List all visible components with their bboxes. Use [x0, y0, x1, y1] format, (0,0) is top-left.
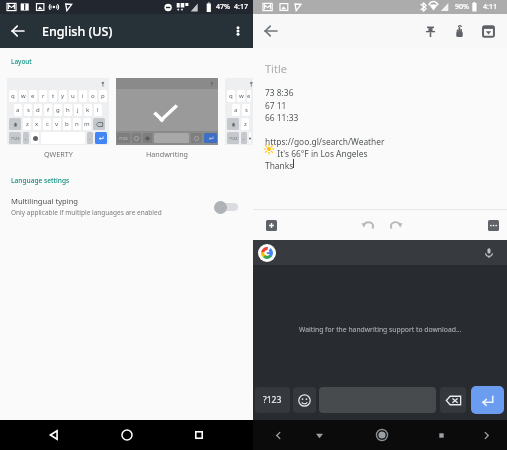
staticText: x	[35, 120, 39, 128]
button[interactable]: Back	[36, 420, 72, 450]
staticText: e	[247, 92, 251, 100]
button[interactable]: Back	[253, 14, 289, 48]
staticText: b	[65, 120, 69, 128]
staticText: r	[42, 92, 45, 100]
button[interactable]: Add	[261, 215, 281, 235]
staticText: ?123	[229, 136, 238, 141]
button[interactable]: Emoji	[293, 387, 316, 413]
button[interactable]: Voice input	[479, 243, 499, 263]
staticText: z	[244, 120, 247, 128]
staticText: .	[89, 135, 91, 142]
button[interactable]: ?123	[116, 78, 218, 145]
button[interactable]: ?123	[255, 387, 290, 413]
staticText: t	[52, 92, 55, 100]
staticText: Multilingual typing	[11, 196, 79, 206]
staticText: 47%	[216, 2, 230, 12]
button[interactable]: Home	[334, 420, 430, 450]
staticText: ?123	[11, 136, 20, 141]
staticText: 90%	[455, 2, 469, 12]
staticText: q	[229, 92, 233, 100]
staticText: v	[55, 120, 59, 128]
staticText: y	[61, 92, 65, 100]
button[interactable]: Remind me	[445, 14, 474, 48]
button[interactable]: Previous	[253, 420, 304, 450]
button[interactable]: Recents	[181, 420, 217, 450]
staticText: ?123	[263, 394, 282, 406]
staticText: q	[11, 92, 15, 100]
button[interactable]: More options	[483, 215, 503, 235]
button[interactable]: Pin	[416, 14, 445, 48]
button[interactable]: Multilingual typing	[0, 196, 253, 217]
staticText: d	[36, 106, 40, 114]
button[interactable]: Next	[468, 420, 504, 450]
staticText: w	[21, 92, 26, 100]
staticText: z	[26, 120, 29, 128]
button[interactable]	[213, 198, 243, 216]
staticText: Layout	[11, 57, 32, 66]
button[interactable]: Enter	[471, 386, 504, 414]
button[interactable]: Undo	[358, 215, 378, 235]
staticText: ,	[25, 135, 27, 142]
button[interactable]: Recents	[430, 420, 452, 450]
staticText: 4:11	[483, 2, 497, 12]
staticText: English (US)	[42, 23, 113, 40]
button[interactable]: q	[7, 78, 109, 145]
button[interactable]: More options	[223, 14, 253, 48]
staticText: a	[16, 106, 20, 114]
button[interactable]: Google search	[258, 244, 276, 262]
staticText: c	[46, 120, 49, 128]
staticText: o	[91, 92, 95, 100]
staticText: Title	[265, 61, 287, 76]
staticText: a	[234, 106, 238, 114]
staticText: QWERTY	[44, 149, 73, 159]
staticText: i	[82, 92, 84, 100]
staticText: h	[66, 106, 70, 114]
staticText: f	[47, 106, 50, 114]
button[interactable]: Backspace	[440, 387, 466, 413]
staticText: j	[77, 106, 79, 114]
staticText: Handwriting	[146, 149, 189, 159]
button[interactable]: Hide keyboard	[304, 420, 334, 450]
staticText: 4:17	[234, 2, 248, 12]
staticText: u	[71, 92, 75, 100]
staticText: w	[239, 92, 244, 100]
staticText: ?123	[119, 136, 128, 141]
staticText: g	[56, 106, 60, 114]
staticText: Language settings	[11, 176, 70, 185]
staticText: s	[27, 106, 30, 114]
staticText: l	[97, 106, 99, 114]
staticText: Only applicable if multiple languages ar…	[11, 208, 162, 217]
staticText: n	[75, 120, 79, 128]
staticText: Waiting for the handwriting support to d…	[299, 325, 462, 334]
staticText: ,	[243, 135, 245, 142]
button[interactable]: Redo	[386, 215, 406, 235]
staticText: p	[101, 92, 105, 100]
button[interactable]: Archive	[474, 14, 503, 48]
staticText: s	[245, 106, 248, 114]
button[interactable]: Back	[0, 14, 36, 48]
button[interactable]: Home	[109, 420, 145, 450]
staticText: e	[31, 92, 35, 100]
staticText: k	[86, 106, 90, 114]
button[interactable]: q	[225, 78, 253, 145]
staticText: m	[84, 120, 90, 128]
staticText: 73 8:36 67 11 66 11:33 https://goo.gl/se…	[265, 87, 385, 171]
